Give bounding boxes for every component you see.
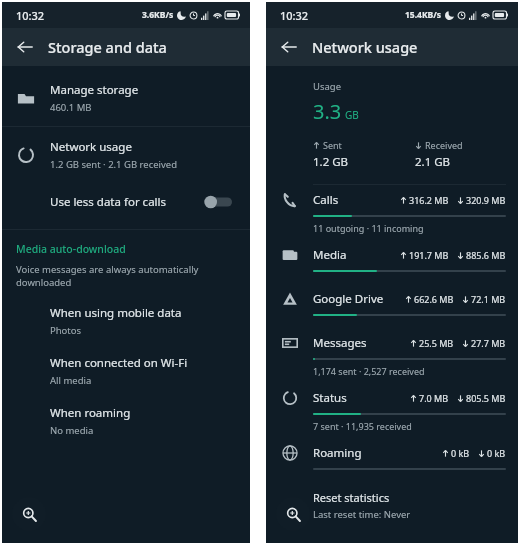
staticText: 72.1 MB [471,293,506,305]
button[interactable]: Google Drive [266,284,518,328]
staticText: Network usage [312,37,418,57]
staticText: When roaming [50,405,131,421]
staticText: All media [50,374,92,387]
button[interactable]: When connected on Wi-Fi [2,353,250,389]
staticText: Media auto-download [16,242,126,256]
staticText: 1,174 sent · 2,527 received [313,365,425,377]
staticText: Usage [313,80,342,93]
staticText: 662.6 MB [414,293,454,305]
staticText: 7.0 MB [419,392,449,404]
button[interactable]: Use less data for calls [2,185,250,219]
staticText: Received [425,139,463,151]
button[interactable]: When using mobile data [2,303,250,339]
staticText: 2.1 GB [415,154,451,170]
staticText: 10:32 [280,8,309,23]
staticText: Google Drive [313,291,384,307]
staticText: Manage storage [50,82,139,98]
staticText: 885.6 MB [466,249,506,261]
staticText: 191.7 MB [409,249,449,261]
staticText: No media [50,424,94,437]
staticText: 15.4KB/s [405,9,442,21]
staticText: Photos [50,324,82,337]
staticText: When connected on Wi-Fi [50,355,188,371]
button[interactable]: Back [274,32,304,62]
staticText: 1.2 GB sent · 2.1 GB received [50,158,178,171]
staticText: Sent [323,139,342,151]
staticText: Roaming [313,445,362,461]
staticText: 316.2 MB [409,194,449,206]
staticText: 3.6KB/s [142,9,174,21]
button[interactable]: Back [10,32,40,62]
staticText: 25.5 MB [419,337,454,349]
button[interactable]: Media [266,240,518,284]
button[interactable]: When roaming [2,403,250,439]
staticText: 10:32 [16,8,45,23]
button[interactable]: Status [266,383,518,438]
staticText: Network usage [50,139,132,155]
staticText: Calls [313,192,339,208]
staticText: 0 kB [451,447,470,459]
staticText: Use less data for calls [50,194,167,210]
button[interactable]: Calls [266,185,518,240]
staticText: 0 kB [487,447,506,459]
staticText: Media [313,247,347,263]
staticText: When using mobile data [50,305,182,321]
staticText: Last reset time: Never [313,508,411,521]
button[interactable]: Reset statistics [266,488,518,521]
button[interactable]: Search [276,497,310,531]
staticText: Voice messages are always automatically … [16,263,250,289]
staticText: Reset statistics [313,490,390,505]
staticText: Messages [313,335,367,351]
staticText: GB [345,108,359,122]
staticText: 27.7 MB [471,337,506,349]
button[interactable]: Manage storage [2,78,250,118]
staticText: 1.2 GB [313,154,349,170]
button[interactable]: Roaming [266,438,518,482]
staticText: 7 sent · 11,935 received [313,420,412,432]
staticText: 460.1 MB [50,101,92,114]
button[interactable]: Search [12,497,46,531]
staticText: 320.9 MB [466,194,506,206]
staticText: Status [313,390,347,406]
staticText: 3.3 [313,98,342,125]
staticText: 805.5 MB [466,392,506,404]
staticText: Storage and data [48,37,167,57]
button[interactable]: Network usage [2,135,250,175]
staticText: 11 outgoing · 11 incoming [313,222,424,234]
button[interactable]: Messages [266,328,518,383]
